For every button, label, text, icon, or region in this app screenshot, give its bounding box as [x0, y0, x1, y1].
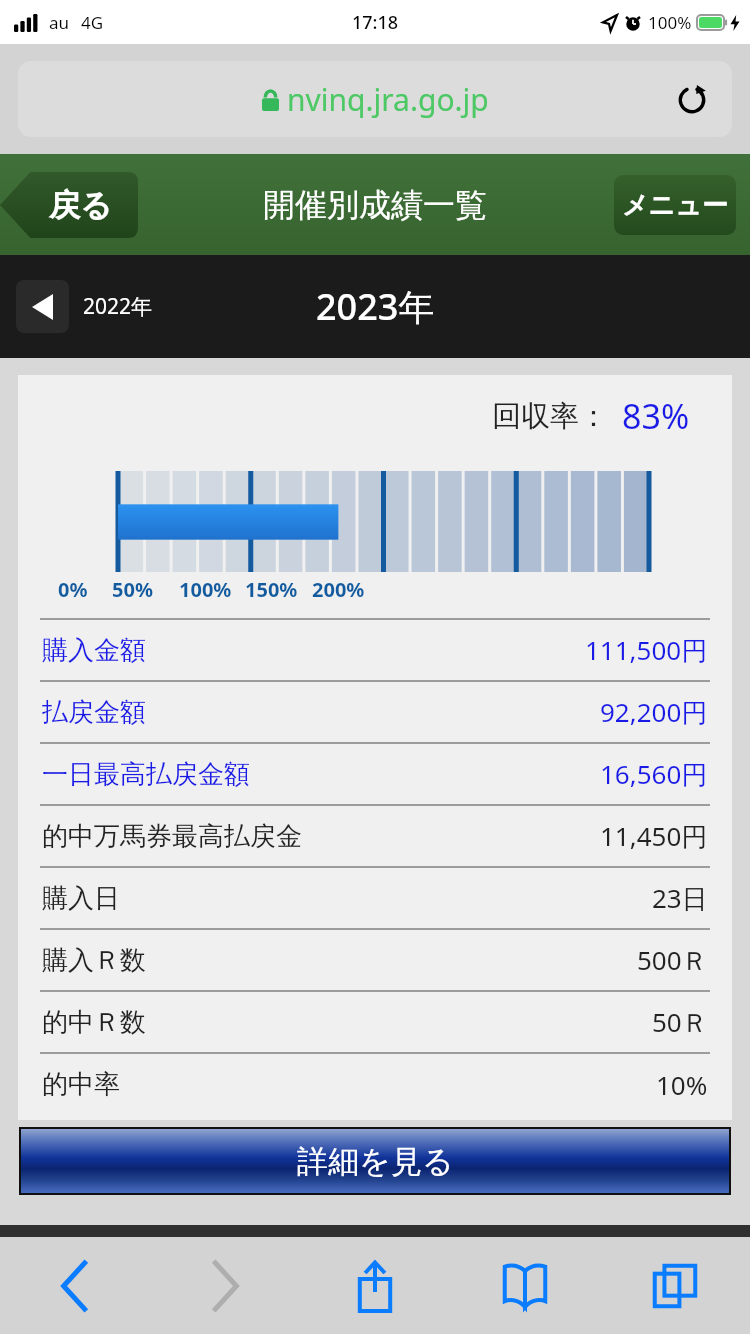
staticText: 111,500円	[585, 632, 708, 668]
staticText: 的中万馬券最高払戻金	[42, 820, 302, 853]
button[interactable]: 詳細を見る	[21, 1129, 729, 1193]
staticText: 16,560円	[600, 756, 708, 792]
button[interactable]: Bookmarks	[450, 1237, 600, 1334]
staticText: 50Ｒ	[652, 1004, 708, 1040]
staticText: 100%	[179, 576, 232, 603]
button[interactable]: 購入Ｒ数	[18, 928, 732, 990]
staticText: 2023年	[316, 282, 435, 331]
staticText: 0%	[58, 576, 88, 603]
button[interactable]: 購入金額	[18, 618, 732, 680]
button[interactable]: Previous year	[16, 280, 153, 333]
button[interactable]: 戻る	[0, 172, 138, 238]
staticText: 開催別成績一覧	[263, 185, 487, 225]
button[interactable]: 払戻金額	[18, 680, 732, 742]
staticText: 50%	[112, 576, 153, 603]
staticText: 購入Ｒ数	[42, 944, 146, 977]
staticText: メニュー	[622, 189, 728, 222]
button[interactable]: 的中Ｒ数	[18, 990, 732, 1052]
staticText: 92,200円	[600, 694, 708, 730]
staticText: 200%	[312, 576, 365, 603]
staticText: 一日最高払戻金額	[42, 758, 250, 791]
staticText: 戻る	[49, 186, 112, 225]
button[interactable]: Reload	[670, 77, 714, 121]
staticText: 詳細を見る	[297, 1142, 454, 1181]
other: Previous year	[16, 280, 69, 333]
staticText: 150%	[245, 576, 298, 603]
button[interactable]: Back	[0, 1237, 150, 1334]
staticText: 2022年	[83, 292, 153, 321]
button[interactable]: 購入日	[18, 866, 732, 928]
button[interactable]: Share	[300, 1237, 450, 1334]
staticText: 購入日	[42, 882, 120, 915]
staticText: au	[49, 11, 70, 34]
staticText: 10%	[656, 1067, 708, 1102]
staticText: 4G	[81, 11, 104, 34]
staticText: 的中Ｒ数	[42, 1006, 146, 1039]
staticText: 500Ｒ	[637, 942, 708, 978]
staticText: 83%	[622, 393, 690, 439]
staticText: 23日	[652, 880, 708, 916]
staticText: nvinq.jra.go.jp	[287, 79, 489, 120]
staticText: 的中率	[42, 1068, 120, 1101]
staticText: 購入金額	[42, 634, 146, 667]
staticText: 17:18	[352, 10, 399, 35]
staticText: 回収率：	[492, 398, 608, 435]
button[interactable]: 一日最高払戻金額	[18, 742, 732, 804]
staticText: 払戻金額	[42, 696, 146, 729]
button[interactable]: 的中万馬券最高払戻金	[18, 804, 732, 866]
button[interactable]: 的中率	[18, 1052, 732, 1114]
button[interactable]: Tabs	[600, 1237, 750, 1334]
staticText: 11,450円	[600, 818, 708, 854]
button[interactable]: Address bar	[18, 61, 732, 137]
button[interactable]: Forward	[150, 1237, 300, 1334]
staticText: 100%	[648, 11, 692, 34]
button[interactable]: メニュー	[614, 175, 736, 235]
